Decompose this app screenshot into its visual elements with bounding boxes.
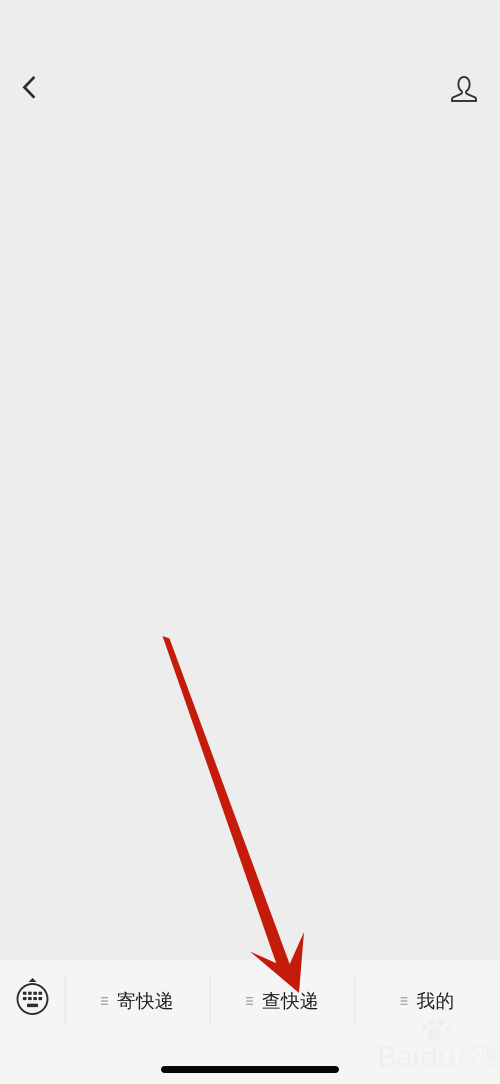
staticText: 查快递 [262,989,319,1013]
button[interactable]: Back [5,62,57,106]
button[interactable]: 寄快递 [65,960,210,1042]
button[interactable]: Account [443,62,495,106]
button[interactable]: 查快递 [210,960,355,1042]
button[interactable]: Keyboard [0,960,65,1042]
staticText: 寄快递 [117,989,174,1013]
staticText: 我的 [416,989,454,1013]
button[interactable]: 我的 [355,960,500,1042]
